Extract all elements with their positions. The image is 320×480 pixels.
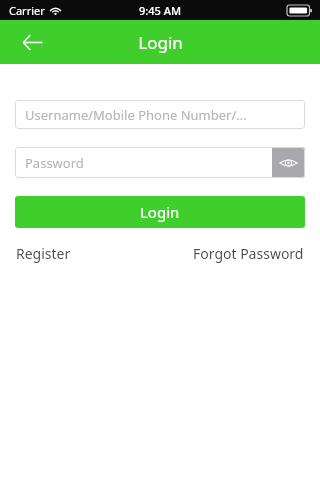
button[interactable]: Password (15, 147, 272, 178)
staticText: Username/Mobile Phone Number/… (25, 106, 247, 124)
staticText: Login (140, 202, 180, 222)
staticText: Forgot Password (193, 244, 304, 263)
button[interactable]: Username/Mobile Phone Number/… (15, 100, 305, 129)
staticText: Login (138, 31, 183, 54)
staticText: Password (25, 154, 84, 172)
button[interactable]: Login (15, 196, 305, 228)
button[interactable]: Forgot Password (193, 240, 304, 267)
button[interactable]: Show password (272, 147, 305, 178)
staticText: Register (16, 244, 71, 263)
staticText: Carrier (9, 3, 45, 18)
button[interactable]: Back (14, 24, 50, 60)
button[interactable]: Register (16, 240, 71, 267)
staticText: 9:45 AM (139, 3, 182, 18)
